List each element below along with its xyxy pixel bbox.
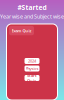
staticText: Exam Quiz <box>11 28 31 33</box>
staticText: #Started <box>17 3 46 12</box>
button[interactable]: Physics <box>24 65 39 71</box>
staticText: Year wise and Subject wise <box>0 13 64 20</box>
button[interactable]: 2024 <box>24 58 39 64</box>
staticText: 2024 <box>28 58 36 64</box>
staticText: Start Quiz <box>27 73 37 83</box>
staticText: Physics <box>25 66 38 71</box>
button[interactable]: Start Quiz <box>24 75 39 81</box>
